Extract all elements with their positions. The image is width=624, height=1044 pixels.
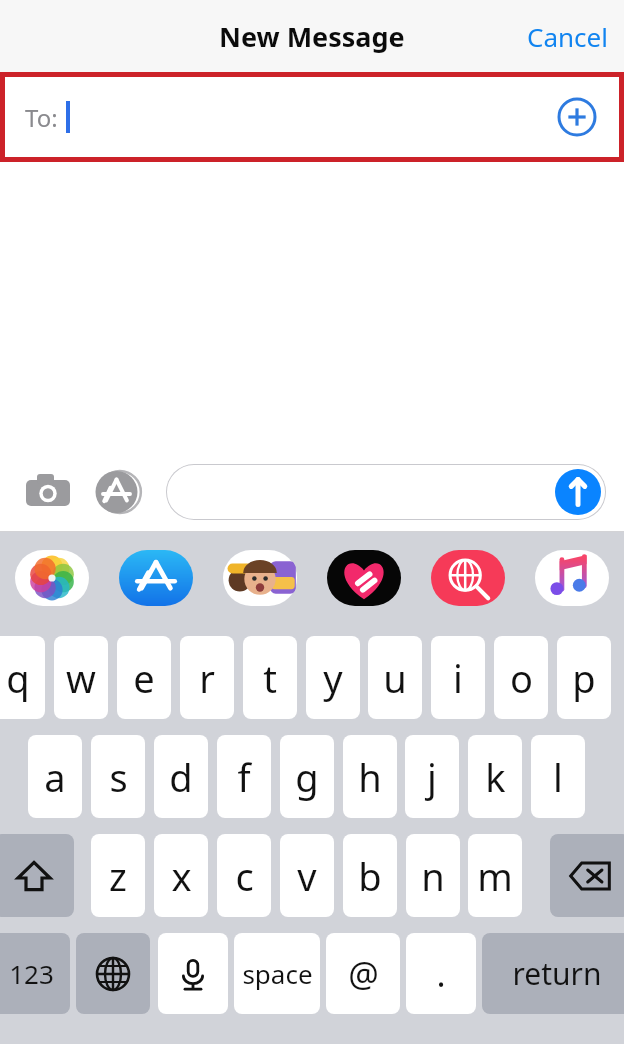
button[interactable]: Images: [430, 548, 506, 608]
staticText: b: [358, 850, 382, 902]
button[interactable]: Fitness: [326, 548, 402, 608]
staticText: r: [199, 652, 215, 704]
staticText: c: [235, 850, 254, 902]
button[interactable]: To:: [5, 77, 619, 157]
staticText: y: [323, 652, 343, 704]
staticText: h: [358, 751, 382, 803]
button[interactable]: @: [326, 933, 400, 1014]
staticText: e: [133, 652, 155, 704]
button[interactable]: Photos: [14, 548, 90, 608]
staticText: q: [6, 652, 30, 704]
button[interactable]: z: [91, 834, 145, 917]
button[interactable]: 123: [0, 933, 70, 1014]
button[interactable]: Music: [534, 548, 610, 608]
button[interactable]: Add contact: [549, 89, 605, 145]
staticText: To:: [25, 101, 58, 134]
staticText: space: [242, 956, 313, 991]
staticText: u: [383, 652, 407, 704]
staticText: d: [169, 751, 193, 803]
button[interactable]: i: [431, 636, 485, 719]
staticText: l: [553, 751, 563, 803]
button[interactable]: y: [306, 636, 360, 719]
button[interactable]: Camera: [20, 464, 76, 520]
staticText: j: [427, 751, 437, 803]
button[interactable]: return: [482, 933, 624, 1014]
button[interactable]: k: [468, 735, 522, 818]
staticText: Cancel: [527, 19, 608, 54]
button[interactable]: Shift: [0, 834, 74, 917]
staticText: f: [237, 751, 251, 803]
staticText: x: [171, 850, 192, 902]
button[interactable]: x: [154, 834, 208, 917]
button[interactable]: space: [234, 933, 320, 1014]
button[interactable]: n: [406, 834, 460, 917]
button[interactable]: Change keyboard: [76, 933, 150, 1014]
button[interactable]: v: [280, 834, 334, 917]
staticText: n: [421, 850, 445, 902]
button[interactable]: Backspace: [550, 834, 624, 917]
staticText: o: [510, 652, 533, 704]
button[interactable]: e: [117, 636, 171, 719]
button[interactable]: h: [343, 735, 397, 818]
staticText: @: [348, 951, 379, 997]
button[interactable]: .: [406, 933, 476, 1014]
staticText: k: [485, 751, 506, 803]
button[interactable]: s: [91, 735, 145, 818]
button[interactable]: App Store: [118, 548, 194, 608]
button[interactable]: App Store: [90, 464, 146, 520]
staticText: p: [572, 652, 596, 704]
button[interactable]: u: [368, 636, 422, 719]
staticText: m: [477, 850, 513, 902]
staticText: v: [297, 850, 317, 902]
button[interactable]: o: [494, 636, 548, 719]
button[interactable]: Memoji: [222, 548, 298, 608]
staticText: s: [109, 751, 128, 803]
staticText: New Message: [219, 18, 405, 55]
button[interactable]: p: [557, 636, 611, 719]
button[interactable]: Cancel: [511, 9, 624, 64]
button[interactable]: Send: [166, 464, 606, 520]
staticText: t: [263, 652, 277, 704]
button[interactable]: t: [243, 636, 297, 719]
button[interactable]: d: [154, 735, 208, 818]
button[interactable]: Send: [554, 468, 602, 516]
staticText: return: [512, 953, 602, 994]
staticText: a: [44, 751, 66, 803]
button[interactable]: m: [468, 834, 522, 917]
button[interactable]: f: [217, 735, 271, 818]
button[interactable]: a: [28, 735, 82, 818]
button[interactable]: b: [343, 834, 397, 917]
staticText: w: [66, 652, 96, 704]
button[interactable]: w: [54, 636, 108, 719]
staticText: g: [295, 751, 319, 803]
button[interactable]: c: [217, 834, 271, 917]
button[interactable]: l: [531, 735, 585, 818]
button[interactable]: r: [180, 636, 234, 719]
staticText: 123: [9, 956, 54, 991]
button[interactable]: Dictate: [158, 933, 228, 1014]
button[interactable]: g: [280, 735, 334, 818]
button[interactable]: q: [0, 636, 45, 719]
staticText: .: [436, 951, 446, 997]
button[interactable]: j: [405, 735, 459, 818]
staticText: i: [453, 652, 463, 704]
staticText: z: [109, 850, 127, 902]
